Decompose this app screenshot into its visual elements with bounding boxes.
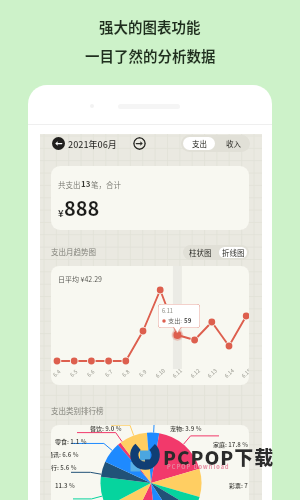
staticText: 强大的图表功能 bbox=[99, 16, 201, 37]
staticText: 通讯: 6.6 % bbox=[51, 450, 79, 459]
staticText: 6.11 bbox=[171, 366, 184, 380]
staticText: 家庭: 17.8 % bbox=[213, 440, 249, 449]
staticText: 一目了然的分析数据 bbox=[85, 45, 216, 66]
staticText: 6.4 bbox=[51, 367, 63, 379]
staticText: 宠物: 3.9 % bbox=[170, 425, 202, 433]
staticText: ¥ bbox=[58, 206, 64, 220]
staticText: 6.14 bbox=[223, 366, 236, 380]
staticText: 支出 bbox=[192, 138, 207, 149]
staticText: 11.3 % bbox=[55, 481, 75, 490]
staticText: 笔，合计 bbox=[91, 179, 121, 190]
staticText: 6.7 bbox=[103, 367, 115, 379]
staticText: 6.9 bbox=[137, 367, 149, 379]
staticText: 支出类别排行榜 bbox=[51, 405, 104, 416]
staticText: 收入 bbox=[226, 138, 241, 149]
staticText: 餐饮: 9.0 % bbox=[90, 425, 122, 433]
staticText: 日平均 ¥42.29 bbox=[58, 274, 102, 284]
staticText: 6.8 bbox=[120, 367, 132, 379]
button[interactable]: 折线图 bbox=[219, 247, 247, 258]
staticText: PCPOP下载 bbox=[163, 443, 275, 471]
staticText: 6.6 bbox=[85, 367, 97, 379]
staticText: 6.11 bbox=[162, 307, 173, 315]
staticText: PCPOP Download bbox=[167, 463, 230, 471]
staticText: 6.10 bbox=[154, 366, 167, 380]
staticText: 6.5 bbox=[68, 367, 80, 379]
button[interactable]: 柱状图 bbox=[185, 247, 215, 258]
staticText: 6.12 bbox=[189, 366, 202, 380]
staticText: 折线图 bbox=[222, 247, 245, 258]
staticText: 零食: 1.1 % bbox=[55, 437, 87, 446]
button[interactable]: Next month bbox=[133, 137, 146, 150]
staticText: 彩票: 7 bbox=[229, 481, 248, 490]
staticText: 支出: bbox=[168, 316, 184, 325]
staticText: 柱状图 bbox=[189, 247, 212, 258]
staticText: 2021年06月 bbox=[68, 138, 117, 151]
staticText: 6.15 bbox=[240, 366, 249, 380]
staticText: 支出月趋势图 bbox=[51, 246, 96, 257]
staticText: 59 bbox=[184, 316, 192, 325]
button[interactable]: 收入 bbox=[219, 137, 248, 150]
staticText: 888 bbox=[64, 193, 100, 222]
staticText: 共支出 bbox=[58, 179, 81, 190]
staticText: 6.13 bbox=[206, 366, 219, 380]
button[interactable]: Previous month bbox=[52, 137, 65, 150]
button[interactable]: 支出 bbox=[183, 137, 215, 150]
staticText: 13 bbox=[81, 178, 91, 190]
staticText: 旅行: 5.6 % bbox=[51, 463, 77, 472]
